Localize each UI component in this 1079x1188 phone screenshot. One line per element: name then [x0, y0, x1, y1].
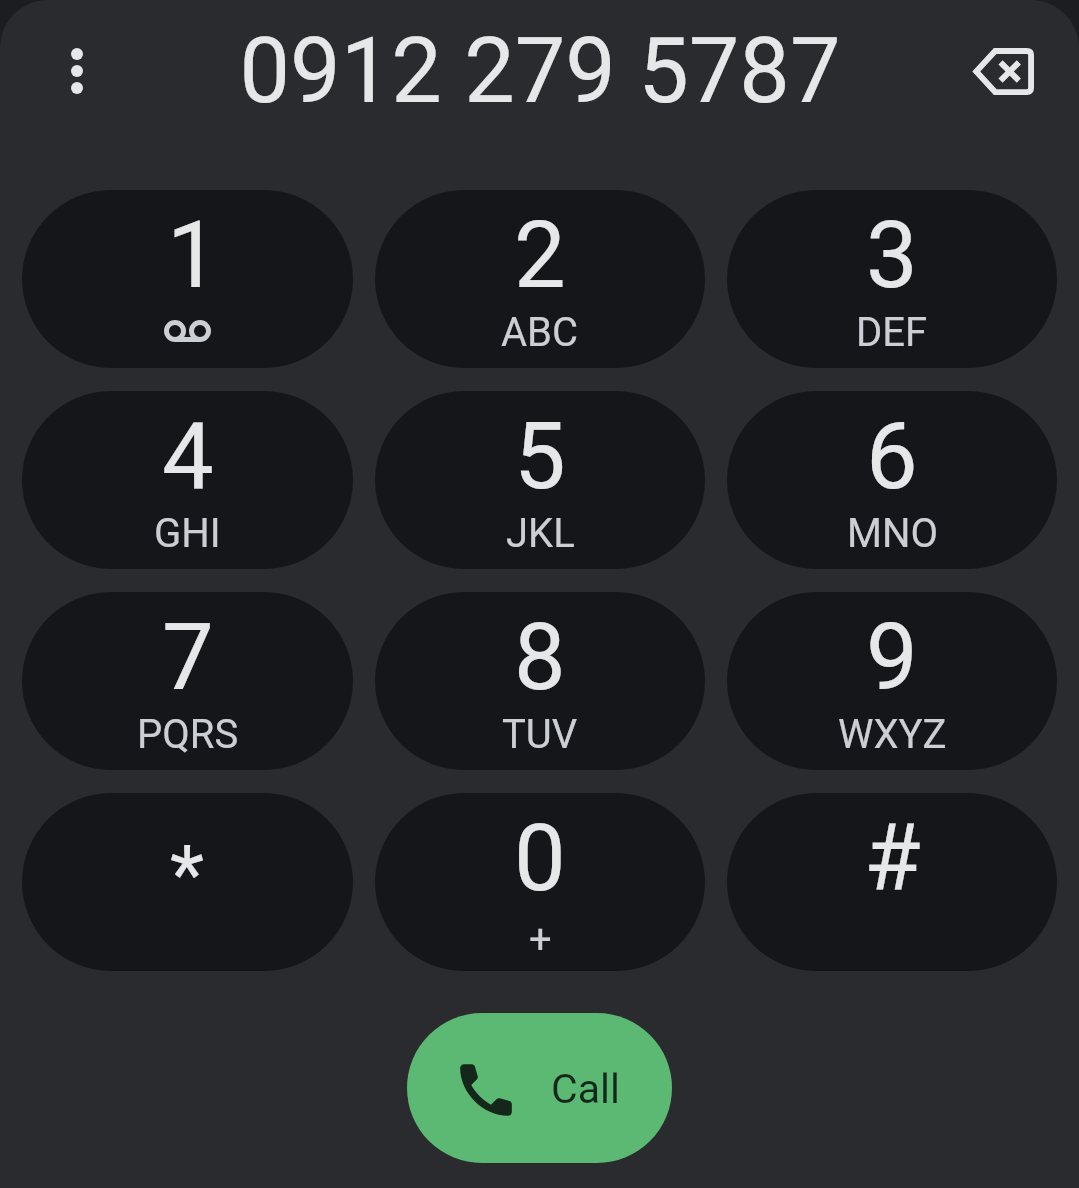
staticText: 2	[514, 202, 566, 310]
staticText: Call	[551, 1065, 620, 1113]
staticText: ABC	[501, 309, 579, 356]
staticText: 0912 279 5787	[239, 19, 841, 124]
button[interactable]: #	[727, 793, 1057, 971]
button[interactable]: 3	[727, 190, 1057, 368]
button[interactable]: 7	[22, 592, 353, 770]
staticText: *	[170, 829, 205, 922]
staticText: PQRS	[137, 711, 239, 758]
button[interactable]: 9	[727, 592, 1057, 770]
staticText: 4	[162, 403, 214, 511]
staticText: 1	[167, 202, 219, 310]
staticText: 5	[514, 403, 566, 511]
button[interactable]: 4	[22, 391, 353, 569]
staticText: 9	[866, 604, 918, 712]
staticText: 0	[514, 805, 566, 913]
staticText: 6	[866, 403, 918, 511]
button[interactable]: Backspace	[957, 25, 1049, 117]
staticText: GHI	[154, 510, 221, 557]
staticText: 8	[514, 604, 566, 712]
staticText: #	[864, 805, 921, 913]
button[interactable]: 5	[375, 391, 705, 569]
staticText: 3	[866, 202, 918, 310]
staticText: TUV	[502, 711, 578, 758]
button[interactable]: 8	[375, 592, 705, 770]
button[interactable]: 1	[22, 190, 353, 368]
button[interactable]: 2	[375, 190, 705, 368]
staticText: 7	[162, 604, 214, 712]
staticText: DEF	[856, 309, 928, 356]
button[interactable]: More options	[31, 25, 123, 117]
staticText: WXYZ	[838, 711, 947, 758]
button[interactable]: 6	[727, 391, 1057, 569]
staticText: MNO	[847, 510, 938, 557]
staticText: JKL	[506, 510, 575, 557]
button[interactable]: 0	[375, 793, 705, 971]
staticText: +	[529, 916, 552, 963]
button[interactable]: Call	[407, 1013, 672, 1163]
button[interactable]: *	[22, 793, 353, 971]
